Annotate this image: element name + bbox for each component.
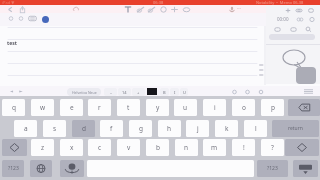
- button[interactable]: ?123: [2, 160, 24, 177]
- button[interactable]: Paper style: [28, 15, 37, 22]
- staticText: t: [127, 103, 130, 112]
- button[interactable]: ?: [261, 139, 284, 156]
- staticText: ?123: [8, 165, 19, 172]
- button[interactable]: c: [88, 139, 111, 156]
- button[interactable]: Ink colour: [42, 16, 49, 23]
- button[interactable]: v: [117, 139, 140, 156]
- button[interactable]: Backspace: [288, 99, 320, 116]
- button[interactable]: f: [100, 120, 123, 137]
- button[interactable]: x: [60, 139, 83, 156]
- button[interactable]: Next field: [17, 89, 25, 94]
- button[interactable]: +: [132, 88, 145, 96]
- button[interactable]: Search: [304, 26, 313, 33]
- button[interactable]: Hide keyboard: [304, 89, 313, 94]
- button[interactable]: Shift: [2, 139, 27, 156]
- button[interactable]: return: [272, 120, 319, 137]
- button[interactable]: u: [174, 99, 197, 116]
- button[interactable]: Bullet list: [257, 89, 265, 95]
- staticText: test: [7, 40, 17, 47]
- button[interactable]: !: [232, 139, 255, 156]
- button[interactable]: More options: [308, 16, 316, 23]
- staticText: s: [53, 124, 57, 133]
- button[interactable]: ?123: [257, 160, 288, 177]
- button[interactable]: I: [170, 88, 179, 96]
- button[interactable]: g: [129, 120, 152, 137]
- button[interactable]: Hide keyboard: [293, 160, 318, 177]
- button[interactable]: z: [31, 139, 54, 156]
- button[interactable]: Pen: [135, 5, 146, 14]
- staticText: v: [127, 143, 131, 152]
- button[interactable]: Shapes: [169, 5, 180, 14]
- button[interactable]: o: [232, 99, 255, 116]
- button[interactable]: Eraser: [158, 5, 169, 14]
- staticText: Notability • Memo 06-38: [256, 0, 304, 5]
- button[interactable]: Add page: [284, 7, 292, 14]
- staticText: Helvetica Neue: [72, 90, 97, 95]
- staticText: U: [183, 90, 186, 95]
- button[interactable]: Playback: [296, 16, 304, 23]
- button[interactable]: e: [60, 99, 83, 116]
- button[interactable]: Delete: [307, 7, 315, 14]
- button[interactable]: Text tool: [123, 5, 133, 14]
- button[interactable]: Back: [5, 5, 16, 14]
- button[interactable]: n: [175, 139, 198, 156]
- staticText: I: [174, 90, 176, 95]
- staticText: g: [139, 124, 143, 133]
- button[interactable]: m: [203, 139, 226, 156]
- button[interactable]: y: [146, 99, 169, 116]
- button[interactable]: Image: [17, 15, 25, 22]
- staticText: B: [163, 90, 166, 95]
- button[interactable]: s: [43, 120, 66, 137]
- button[interactable]: q: [2, 99, 25, 116]
- button[interactable]: Voice input: [60, 160, 84, 177]
- button[interactable]: Shift: [285, 139, 319, 156]
- button[interactable]: j: [186, 120, 209, 137]
- staticText: u: [183, 103, 188, 112]
- button[interactable]: Notes: [289, 26, 298, 33]
- staticText: return: [288, 125, 303, 132]
- button[interactable]: Library: [273, 26, 282, 33]
- button[interactable]: Highlighter: [146, 5, 157, 14]
- staticText: a: [24, 124, 28, 133]
- staticText: m: [211, 143, 218, 152]
- button[interactable]: Undo: [71, 5, 81, 14]
- button[interactable]: Share: [17, 5, 28, 14]
- button[interactable]: r: [88, 99, 111, 116]
- staticText: w: [40, 103, 46, 112]
- button[interactable]: w: [31, 99, 54, 116]
- button[interactable]: i: [203, 99, 226, 116]
- button[interactable]: Align left: [230, 89, 239, 95]
- button[interactable]: k: [215, 120, 238, 137]
- staticText: r: [98, 103, 101, 112]
- staticText: 06:38: [153, 0, 164, 5]
- button[interactable]: t: [117, 99, 140, 116]
- staticText: e: [70, 103, 74, 112]
- button[interactable]: Record: [228, 5, 236, 14]
- staticText: p: [271, 103, 275, 112]
- button[interactable]: Helvetica Neue: [67, 88, 101, 96]
- button[interactable]: Lasso: [181, 5, 192, 14]
- button[interactable]: U: [180, 88, 188, 96]
- staticText: 00:00: [277, 16, 289, 22]
- button[interactable]: l: [244, 120, 267, 137]
- button[interactable]: Previous field: [8, 89, 15, 94]
- staticText: 14: [122, 90, 127, 95]
- button[interactable]: 14: [118, 88, 131, 96]
- button[interactable]: B: [160, 88, 169, 96]
- button[interactable]: a: [14, 120, 37, 137]
- button[interactable]: d: [72, 120, 95, 137]
- button[interactable]: h: [158, 120, 181, 137]
- button[interactable]: –: [104, 88, 117, 96]
- button[interactable]: Align centre: [243, 89, 252, 95]
- button[interactable]: b: [146, 139, 169, 156]
- button[interactable]: Format: [7, 15, 15, 22]
- button[interactable]: Language: [30, 160, 52, 177]
- staticText: z: [41, 143, 45, 152]
- button[interactable]: Share note: [295, 7, 303, 14]
- button[interactable]: p: [261, 99, 284, 116]
- staticText: f: [110, 124, 113, 133]
- staticText: iPad ▼: [2, 0, 15, 5]
